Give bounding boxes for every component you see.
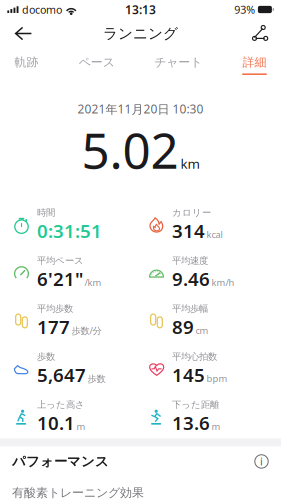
- staticText: 5,647: [37, 362, 86, 387]
- staticText: km/h: [211, 276, 234, 288]
- staticText: 時間: [37, 207, 55, 218]
- staticText: 177: [37, 314, 70, 339]
- button[interactable]: パフォーマンス: [0, 446, 281, 476]
- staticText: 平均歩幅: [172, 303, 208, 314]
- button[interactable]: チャート: [154, 48, 202, 79]
- staticText: 93%: [234, 2, 255, 17]
- staticText: 314: [172, 218, 205, 243]
- staticText: 上った高さ: [37, 399, 85, 410]
- staticText: 平均心拍数: [172, 351, 217, 362]
- staticText: i: [260, 454, 263, 469]
- staticText: 軌跡: [14, 55, 38, 70]
- staticText: チャート: [154, 55, 202, 70]
- staticText: 10.1: [37, 410, 75, 435]
- staticText: cm: [195, 324, 208, 336]
- staticText: ランニング: [103, 24, 178, 42]
- staticText: 平均ペース: [37, 255, 84, 266]
- staticText: m: [211, 420, 220, 432]
- button[interactable]: ペース: [79, 48, 115, 79]
- staticText: ペース: [79, 55, 115, 70]
- staticText: 13.6: [172, 410, 210, 435]
- staticText: 0:31:51: [37, 218, 102, 243]
- button[interactable]: Share route: [241, 19, 281, 48]
- staticText: 13:13: [125, 1, 156, 17]
- staticText: 下った距離: [172, 399, 219, 410]
- staticText: kcal: [206, 228, 222, 240]
- staticText: bpm: [206, 372, 227, 384]
- staticText: カロリー: [172, 207, 211, 218]
- staticText: 6'21": [37, 266, 83, 291]
- staticText: 歩数/分: [71, 324, 101, 337]
- staticText: 詳細: [242, 55, 266, 70]
- staticText: 有酸素トレーニング効果: [12, 485, 144, 500]
- staticText: km: [180, 155, 199, 172]
- staticText: 5.02: [81, 117, 178, 182]
- staticText: 歩数: [87, 373, 105, 385]
- staticText: 145: [172, 362, 205, 387]
- button[interactable]: 詳細: [242, 48, 267, 79]
- button[interactable]: 軌跡: [14, 48, 39, 79]
- staticText: パフォーマンス: [12, 453, 109, 470]
- staticText: 平均速度: [172, 255, 208, 266]
- staticText: /km: [84, 276, 101, 288]
- staticText: 2021年11月20日 10:30: [77, 101, 203, 117]
- staticText: docomo: [22, 2, 62, 17]
- staticText: 9.46: [172, 266, 210, 291]
- staticText: 平均歩数: [37, 303, 73, 314]
- staticText: 89: [172, 314, 194, 339]
- staticText: m: [76, 420, 85, 432]
- button[interactable]: Back: [0, 19, 42, 48]
- staticText: 歩数: [37, 351, 55, 362]
